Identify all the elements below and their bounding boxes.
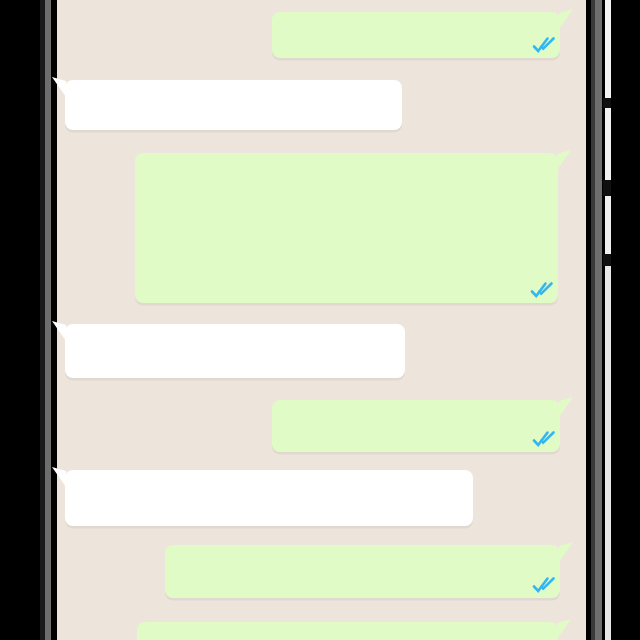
- button[interactable]: Sent message, read: [165, 545, 560, 598]
- button[interactable]: Sent message, read: [272, 12, 560, 58]
- button[interactable]: Sent message, read: [272, 400, 560, 452]
- button[interactable]: Sent message, read: [135, 153, 558, 303]
